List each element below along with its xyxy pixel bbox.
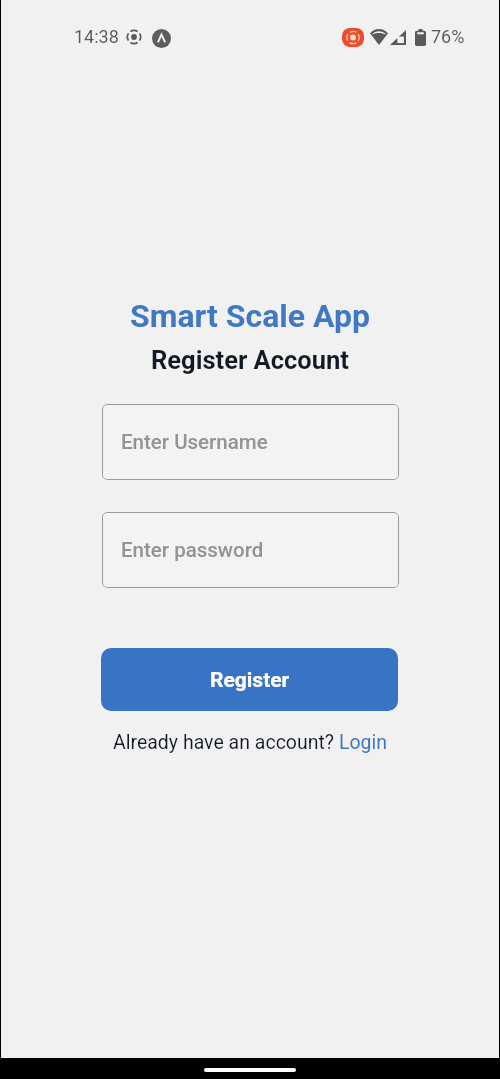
staticText: Login	[339, 731, 388, 754]
staticText: Already have an account?	[113, 731, 339, 754]
button[interactable]: Login	[339, 731, 388, 754]
staticText: 14:38	[74, 26, 119, 47]
other: Recording indicator	[342, 28, 364, 47]
button[interactable]: Enter Username	[102, 404, 399, 480]
other: Battery	[415, 29, 426, 46]
staticText: Register	[210, 668, 290, 693]
staticText: 76%	[431, 26, 465, 47]
button[interactable]: Register	[101, 648, 398, 711]
staticText: Enter Username	[121, 430, 268, 454]
button[interactable]: Enter password	[102, 512, 399, 588]
other: Mobile signal	[390, 30, 406, 45]
other: Wi-Fi	[370, 30, 388, 45]
other: App icon	[152, 29, 171, 48]
staticText: Smart Scale App	[130, 297, 371, 335]
staticText: Enter password	[121, 538, 264, 562]
staticText: Register Account	[151, 345, 349, 375]
other: Screen recording	[126, 29, 142, 45]
